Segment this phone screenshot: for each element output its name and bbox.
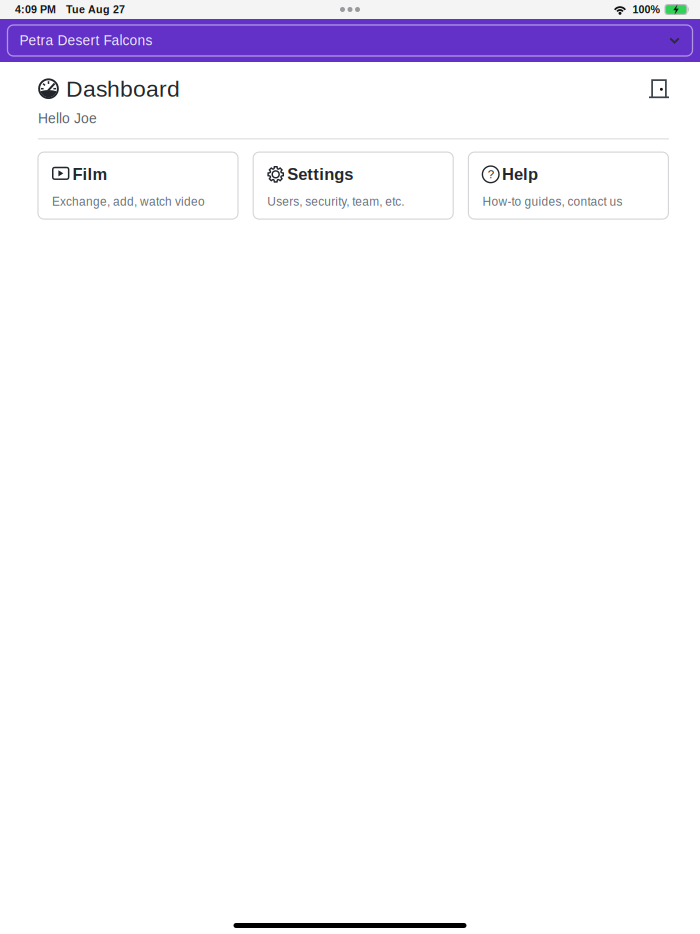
staticText: Exchange, add, watch video	[52, 195, 205, 208]
staticText: Tue Aug 27	[66, 3, 125, 15]
staticText: Help	[502, 165, 538, 184]
staticText: 4:09 PM	[15, 3, 56, 15]
staticText: How-to guides, contact us	[482, 195, 622, 208]
button[interactable]: Settings	[253, 152, 453, 219]
staticText: ?	[488, 168, 494, 181]
staticText: 100%	[632, 3, 659, 15]
staticText: Users, security, team, etc.	[267, 195, 404, 208]
staticText: Film	[72, 165, 107, 184]
staticText: Petra Desert Falcons	[19, 33, 152, 48]
staticText: Settings	[287, 165, 353, 184]
staticText: Hello Joe	[38, 111, 97, 126]
button[interactable]: Petra Desert Falcons	[7, 25, 692, 56]
button[interactable]: Film	[38, 152, 238, 219]
button[interactable]: ?	[468, 152, 668, 219]
staticText: Dashboard	[66, 76, 180, 101]
button[interactable]: Sign out	[649, 79, 669, 98]
